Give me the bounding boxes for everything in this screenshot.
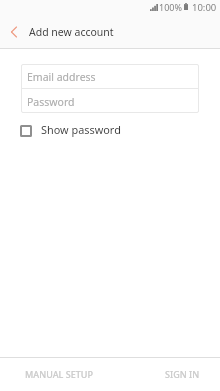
staticText: MANUAL SETUP [25,368,93,380]
staticText: 10:00 [192,1,217,14]
button[interactable]: Back [0,17,28,45]
staticText: Email address [27,70,96,84]
button[interactable]: Email address [21,64,199,88]
staticText: Add new account [29,25,114,39]
staticText: Show password [41,122,121,137]
staticText: Password [27,95,75,109]
staticText: 100% [159,1,182,13]
button[interactable]: Show password [20,123,121,138]
staticText: SIGN IN [165,368,200,380]
button[interactable]: Password [21,89,199,113]
button[interactable]: MANUAL SETUP [0,358,110,391]
button[interactable]: SIGN IN [110,358,220,391]
